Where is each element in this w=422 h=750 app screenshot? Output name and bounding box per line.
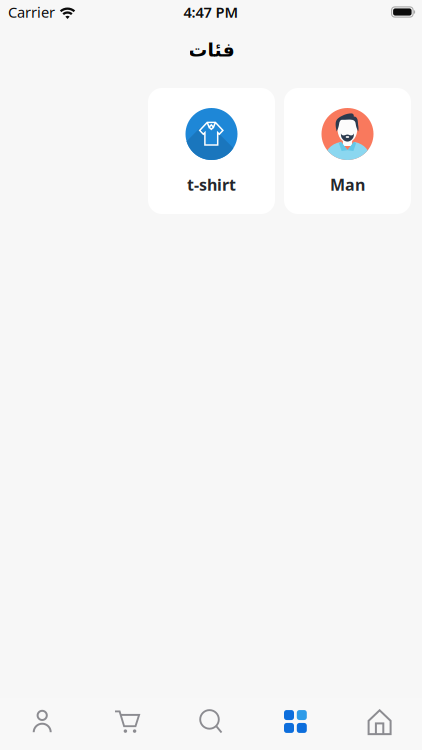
staticText: Man — [330, 174, 365, 195]
staticText: Carrier — [8, 2, 55, 22]
staticText: t-shirt — [187, 174, 236, 195]
button[interactable]: Search — [169, 698, 253, 750]
button[interactable]: Home — [338, 698, 422, 750]
button[interactable]: Account — [0, 698, 84, 750]
button[interactable]: t-shirt — [148, 88, 275, 214]
button[interactable]: Cart — [84, 698, 169, 750]
staticText: فئات — [188, 39, 234, 61]
staticText: 4:47 PM — [183, 2, 238, 22]
button[interactable]: Categories — [253, 698, 338, 750]
button[interactable]: Man — [284, 88, 411, 214]
